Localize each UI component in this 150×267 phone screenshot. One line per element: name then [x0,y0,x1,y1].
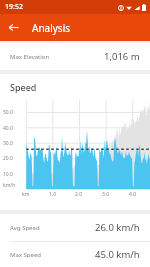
button[interactable]: Max Speed [0,242,150,267]
staticText: 45.0 km/h [95,248,140,261]
staticText: 50.0 [3,109,13,116]
staticText: Avg Speed [10,224,40,232]
staticText: 1,016 m [104,50,140,63]
staticText: 40.0 [3,125,13,132]
staticText: 1.0 [49,191,57,198]
staticText: 2.0 [75,191,83,198]
staticText: 30.0 [3,140,13,147]
staticText: 3.0 [102,191,110,198]
staticText: 10.0 [3,171,13,178]
button[interactable]: Avg Speed [0,214,150,241]
button[interactable]: Max Elevation [0,43,150,70]
staticText: 4.0 [129,191,137,198]
staticText: 26.0 km/h [95,221,140,234]
staticText: km [22,191,30,198]
staticText: Max Speed [10,251,41,259]
staticText: 20.0 [3,155,13,162]
staticText: 19:52 [5,2,23,12]
button[interactable]: Back [0,14,27,41]
staticText: Speed [10,81,37,93]
staticText: Max Elevation [10,53,50,61]
staticText: km/h [3,182,16,189]
staticText: Analysis [32,21,71,35]
